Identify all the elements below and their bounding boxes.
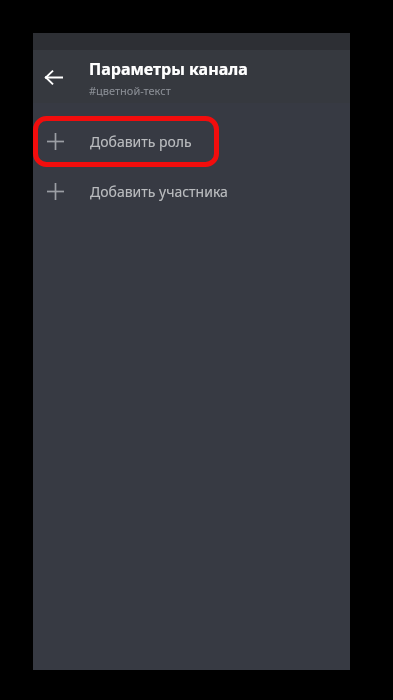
button[interactable]: Назад — [40, 64, 66, 90]
staticText: Добавить роль — [90, 132, 192, 151]
staticText: Добавить участника — [90, 182, 228, 201]
staticText: Параметры канала — [89, 58, 248, 80]
button[interactable]: Добавить роль — [33, 117, 350, 165]
staticText: #цветной-текст — [89, 83, 171, 98]
button[interactable]: Добавить участника — [33, 167, 350, 215]
